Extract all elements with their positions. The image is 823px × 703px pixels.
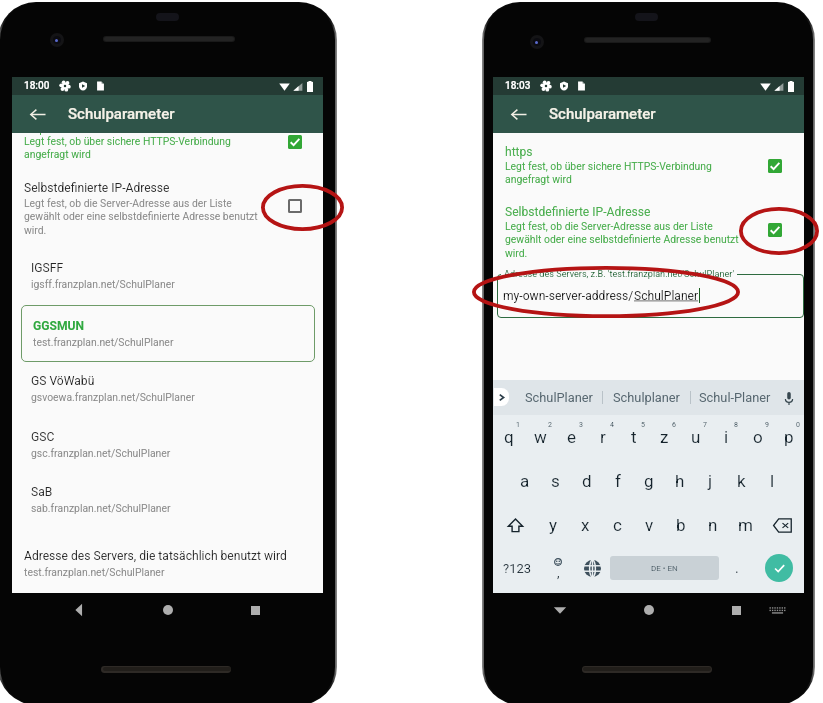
button[interactable]: Recents [725,599,747,621]
staticText: GS VöWabü [31,374,95,388]
staticText: Schulplaner [613,390,680,405]
button[interactable]: Selbstdefinierte IP-Adresse [24,181,264,236]
button[interactable]: b [665,504,697,546]
button[interactable]: https [505,145,745,185]
button[interactable]: Checkbox checked [768,159,782,173]
staticText: , [557,565,560,580]
button[interactable]: f [602,460,633,502]
staticText: m [738,515,753,535]
button[interactable]: c [601,504,633,546]
button[interactable]: Recents [244,599,266,621]
button[interactable]: Change language [575,547,609,589]
button[interactable]: r [587,416,618,458]
staticText: my-own-server-address/ [503,289,634,303]
staticText: 4 [610,421,614,429]
button[interactable]: l [757,460,788,502]
button[interactable]: w [525,416,556,458]
button[interactable]: Done [754,547,804,589]
button[interactable]: Shift [493,504,537,546]
button[interactable]: Switch keyboard [769,607,786,615]
staticText: IGSFF [31,261,64,275]
button[interactable]: GSC [12,424,323,465]
button[interactable]: o [742,416,773,458]
staticText: gsc.franzplan.net/SchulPlaner [31,447,171,459]
staticText: 5 [641,421,645,429]
staticText: l [770,471,775,491]
staticText: d [582,471,592,491]
button[interactable]: SchulPlaner [515,380,602,415]
button[interactable]: e [556,416,587,458]
button[interactable]: h [664,460,695,502]
button[interactable]: k [726,460,757,502]
staticText: SchulPlaner [634,289,699,303]
button[interactable]: n [697,504,729,546]
staticText: Schulparameter [68,105,175,123]
button[interactable]: SaB [12,479,323,520]
staticText: g [644,471,654,491]
button[interactable]: Schul-Planer [691,380,778,415]
staticText: x [581,515,590,535]
staticText: GGSMUN [33,319,85,333]
button[interactable]: q [493,416,525,458]
button[interactable]: GS VöWabü [12,368,323,409]
button[interactable]: Back [549,599,571,621]
staticText: . [735,560,739,576]
staticText: 2 [548,421,552,429]
staticText: Adresse des Servers, z.B. 'test.franzpla… [504,269,734,280]
button[interactable]: Back [505,100,533,128]
button[interactable]: z [649,416,680,458]
staticText: Selbstdefinierte IP-Adresse [505,205,651,219]
staticText: t [631,427,637,447]
button[interactable]: i [711,416,742,458]
button[interactable]: Emoji [541,547,575,589]
staticText: v [645,515,654,535]
button[interactable]: j [695,460,726,502]
staticText: 9 [765,421,769,429]
button[interactable]: Checkbox unchecked [288,199,302,213]
button[interactable]: ?123 [493,547,541,589]
button[interactable]: a [509,460,540,502]
staticText: gsvoewa.franzplan.net/SchulPlaner [31,391,195,403]
staticText: y [549,515,558,535]
staticText: 18:00 [24,80,50,92]
button[interactable]: Home [638,599,660,621]
button[interactable]: m [729,504,761,546]
button[interactable]: Home [157,599,179,621]
staticText: c [613,515,622,535]
button[interactable]: Checkbox checked [768,223,782,237]
button[interactable]: t [618,416,649,458]
staticText: DE • EN [651,564,678,573]
button[interactable]: x [569,504,601,546]
button[interactable]: d [571,460,602,502]
button[interactable]: Checkbox checked [288,135,302,149]
button[interactable]: Backspace [761,504,804,546]
button[interactable]: Adresse des Servers, die tatsächlich ben… [24,549,287,578]
staticText: u [691,427,701,447]
staticText: Legt fest, ob über sichere HTTPS-Verbind… [505,160,745,185]
button[interactable]: Back [68,599,90,621]
button[interactable]: . [720,547,754,589]
button[interactable]: g [633,460,664,502]
button[interactable]: Selbstdefinierte IP-Adresse [505,205,745,259]
button[interactable]: IGSFF [12,255,323,296]
button[interactable]: DE • EN [610,556,719,580]
staticText: 0 [796,421,800,429]
button[interactable]: u [680,416,711,458]
button[interactable]: Expand suggestions [494,388,509,406]
staticText: h [675,471,685,491]
button[interactable]: p [773,416,804,458]
button[interactable]: Voice input [778,387,800,409]
staticText: n [708,515,718,535]
staticText: SchulPlaner [525,390,593,405]
button[interactable]: Back [24,100,52,128]
button[interactable]: v [633,504,665,546]
button[interactable]: s [540,460,571,502]
button[interactable] [497,274,804,318]
staticText: j [708,471,713,491]
button[interactable]: Schulplaner [603,380,690,415]
staticText: b [676,515,686,535]
button[interactable]: y [537,504,569,546]
staticText: o [753,427,763,447]
button[interactable]: GGSMUN [21,305,315,362]
staticText: 3 [579,421,583,429]
